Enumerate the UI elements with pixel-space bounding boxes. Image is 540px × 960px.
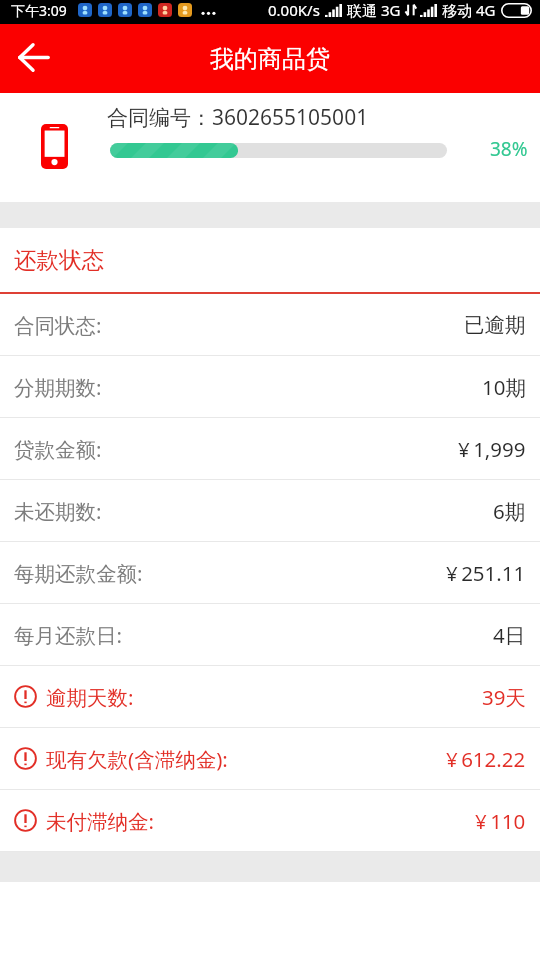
staticText: ¥ 1,999 bbox=[458, 435, 526, 463]
button[interactable]: 未付滞纳金: bbox=[0, 790, 540, 852]
staticText: 逾期天数: bbox=[46, 683, 134, 711]
button[interactable]: 贷款金额: bbox=[0, 418, 540, 480]
staticText: 每期还款金额: bbox=[14, 559, 143, 587]
staticText: 还款状态 bbox=[14, 246, 104, 274]
staticText: ¥ 110 bbox=[475, 807, 526, 835]
staticText: 10期 bbox=[482, 373, 526, 401]
button[interactable]: Back bbox=[10, 29, 58, 85]
button[interactable]: 合同状态: bbox=[0, 294, 540, 356]
staticText: 贷款金额: bbox=[14, 435, 102, 463]
button[interactable]: 分期期数: bbox=[0, 356, 540, 418]
staticText: 合同编号：3602655105001 bbox=[107, 103, 369, 132]
button[interactable]: 每期还款金额: bbox=[0, 542, 540, 604]
staticText: ¥ 251.11 bbox=[446, 559, 526, 587]
staticText: 38% bbox=[490, 136, 528, 162]
button[interactable]: 逾期天数: bbox=[0, 666, 540, 728]
staticText: 未还期数: bbox=[14, 497, 102, 525]
button[interactable]: 未还期数: bbox=[0, 480, 540, 542]
staticText: ¥ 612.22 bbox=[446, 745, 526, 773]
staticText: 联通 3G bbox=[347, 0, 401, 20]
staticText: 6期 bbox=[493, 497, 526, 525]
button[interactable]: 每月还款日: bbox=[0, 604, 540, 666]
staticText: 39天 bbox=[482, 683, 526, 711]
staticText: 移动 4G bbox=[442, 0, 496, 20]
staticText: 我的商品贷 bbox=[210, 44, 330, 74]
staticText: 现有欠款(含滞纳金): bbox=[46, 745, 228, 773]
staticText: 合同状态: bbox=[14, 311, 102, 339]
staticText: 分期期数: bbox=[14, 373, 102, 401]
staticText: 下午3:09 bbox=[11, 1, 67, 20]
staticText: 未付滞纳金: bbox=[46, 807, 154, 835]
staticText: 4日 bbox=[493, 621, 526, 649]
staticText: 已逾期 bbox=[464, 312, 526, 338]
button[interactable]: 现有欠款(含滞纳金): bbox=[0, 728, 540, 790]
staticText: 每月还款日: bbox=[14, 621, 122, 649]
staticText: 0.00K/s bbox=[268, 0, 320, 20]
